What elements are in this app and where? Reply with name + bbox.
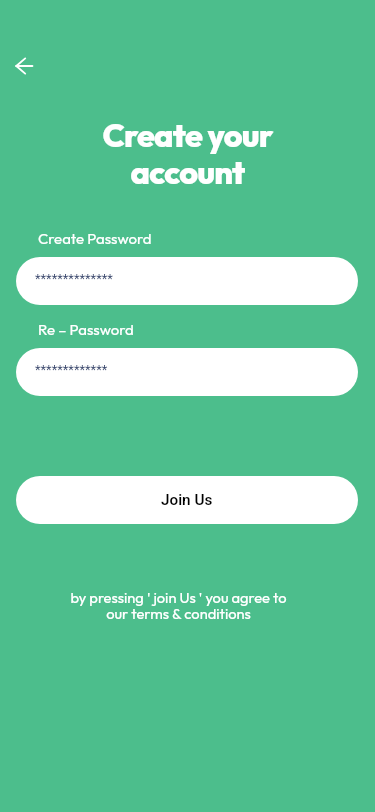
staticText: by pressing ' join Us ' you agree to our… bbox=[0, 588, 357, 622]
staticText: ************* bbox=[35, 362, 108, 377]
staticText: Create Password bbox=[38, 229, 152, 248]
button[interactable]: Back bbox=[4, 46, 44, 86]
button[interactable]: ************** bbox=[16, 257, 358, 305]
staticText: Join Us bbox=[161, 491, 213, 509]
staticText: Re – Password bbox=[38, 320, 134, 339]
button[interactable]: Join Us bbox=[16, 476, 358, 524]
staticText: ************** bbox=[35, 271, 113, 286]
button[interactable]: ************* bbox=[16, 348, 358, 396]
staticText: Create your account bbox=[0, 115, 375, 192]
